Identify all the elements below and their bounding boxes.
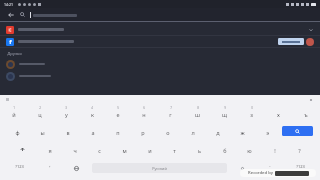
button[interactable]: Назад: [5, 9, 16, 20]
button[interactable]: ь: [187, 140, 212, 158]
staticText: 5: [117, 106, 119, 110]
staticText: 1: [13, 106, 15, 110]
button[interactable]: д: [205, 122, 230, 140]
button[interactable]: 0: [238, 104, 265, 122]
staticText: щ: [222, 111, 227, 118]
button[interactable]: Shift: [8, 140, 37, 158]
button[interactable]: Найти: [282, 126, 313, 136]
staticText: и: [148, 147, 152, 154]
staticText: Друзья: [7, 51, 22, 57]
staticText: ?123: [296, 164, 305, 169]
button[interactable]: Русский: [92, 163, 227, 173]
staticText: м: [122, 147, 127, 154]
button[interactable]: [0, 58, 320, 70]
button[interactable]: а: [80, 122, 105, 140]
button[interactable]: в: [55, 122, 80, 140]
button[interactable]: ч: [62, 140, 87, 158]
staticText: б: [223, 147, 227, 154]
staticText: 8: [197, 106, 199, 110]
staticText: ч: [73, 147, 77, 154]
staticText: р: [141, 129, 145, 136]
button[interactable]: ы: [30, 122, 55, 140]
button[interactable]: Сменить язык: [63, 158, 90, 178]
staticText: f: [9, 38, 12, 46]
staticText: н: [142, 111, 146, 118]
staticText: 6: [143, 106, 145, 110]
staticText: 14:21: [4, 2, 13, 7]
staticText: ?: [298, 147, 301, 154]
button[interactable]: и: [137, 140, 162, 158]
button[interactable]: !: [262, 140, 287, 158]
button[interactable]: 4: [79, 104, 105, 122]
staticText: д: [216, 129, 220, 136]
staticText: т: [173, 147, 176, 154]
button[interactable]: о: [155, 122, 180, 140]
button[interactable]: 3: [53, 104, 79, 122]
staticText: г: [169, 111, 172, 118]
button[interactable]: ?123: [283, 158, 318, 178]
button[interactable]: 9: [211, 104, 238, 122]
staticText: !: [274, 147, 276, 154]
button[interactable]: Поиск: [18, 10, 27, 19]
button[interactable]: т: [162, 140, 187, 158]
staticText: п: [116, 129, 120, 136]
button[interactable]: 7: [157, 104, 184, 122]
button[interactable]: ф: [5, 122, 30, 140]
staticText: 0: [251, 106, 253, 110]
button[interactable]: ъ: [292, 104, 319, 122]
button[interactable]: м: [112, 140, 137, 158]
staticText: з: [250, 111, 253, 118]
staticText: ш: [195, 111, 200, 118]
button[interactable]: я: [37, 140, 62, 158]
button[interactable]: х: [265, 104, 292, 122]
staticText: о: [166, 129, 170, 136]
button[interactable]: ?: [287, 140, 312, 158]
button[interactable]: р: [130, 122, 155, 140]
staticText: ь: [198, 147, 201, 154]
staticText: 9: [224, 106, 226, 110]
staticText: в: [66, 129, 70, 136]
button[interactable]: б: [212, 140, 237, 158]
staticText: ф: [15, 129, 20, 136]
button[interactable]: [278, 38, 304, 45]
staticText: 3: [65, 106, 67, 110]
staticText: Recorded by: [248, 170, 273, 176]
button[interactable]: 2: [27, 104, 53, 122]
button[interactable]: п: [105, 122, 130, 140]
button[interactable]: 6: [131, 104, 157, 122]
button[interactable]: [30, 8, 315, 21]
staticText: ,: [49, 162, 51, 169]
staticText: 7: [170, 106, 172, 110]
staticText: е: [116, 111, 120, 118]
button[interactable]: [229, 158, 256, 178]
button[interactable]: 1: [1, 104, 27, 122]
button[interactable]: [0, 70, 320, 82]
staticText: к: [91, 111, 94, 118]
button[interactable]: Развернуть: [307, 26, 314, 33]
button[interactable]: ж: [230, 122, 255, 140]
staticText: э: [266, 129, 269, 136]
staticText: а: [91, 129, 95, 136]
button[interactable]: f: [0, 36, 320, 47]
button[interactable]: Развернуть: [0, 24, 320, 35]
staticText: у: [65, 111, 68, 118]
staticText: .: [269, 162, 271, 169]
button[interactable]: э: [255, 122, 280, 140]
button[interactable]: 8: [184, 104, 211, 122]
staticText: х: [277, 111, 280, 118]
staticText: ю: [247, 147, 252, 154]
staticText: я: [48, 147, 52, 154]
staticText: й: [12, 111, 16, 118]
button[interactable]: ю: [237, 140, 262, 158]
staticText: 2: [39, 106, 41, 110]
staticText: ж: [240, 129, 245, 136]
button[interactable]: ?123: [2, 158, 36, 178]
staticText: с: [98, 147, 101, 154]
button[interactable]: Настройки клавиатуры: [308, 97, 314, 103]
button[interactable]: 5: [105, 104, 131, 122]
staticText: ы: [40, 129, 45, 136]
button[interactable]: с: [87, 140, 112, 158]
button[interactable]: л: [180, 122, 205, 140]
button[interactable]: .: [256, 158, 283, 178]
